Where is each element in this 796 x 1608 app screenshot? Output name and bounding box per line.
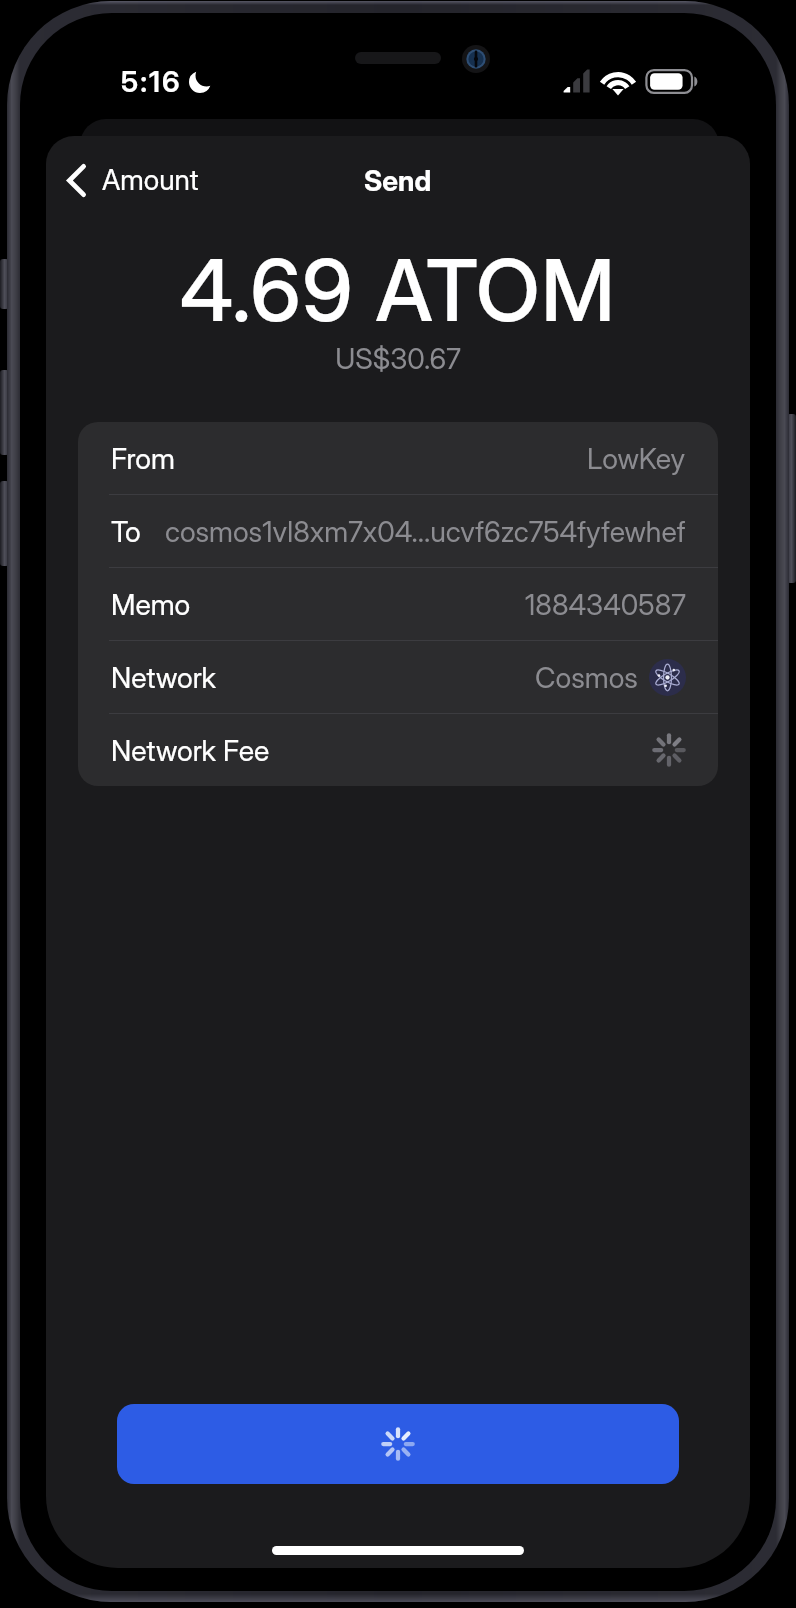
- staticText: cosmos1vl8xm7x04...ucvf6zc754fyfewhef: [165, 514, 686, 548]
- staticText: To: [111, 514, 141, 548]
- staticText: Cosmos: [535, 660, 638, 694]
- staticText: 4.69 ATOM: [46, 239, 750, 342]
- staticText: US$30.67: [46, 341, 750, 375]
- staticText: From: [111, 441, 175, 475]
- staticText: LowKey: [587, 441, 686, 475]
- staticText: 5:16: [121, 64, 182, 99]
- button[interactable]: Confirm and send: [117, 1404, 679, 1484]
- button[interactable]: Network Fee: [78, 714, 718, 786]
- staticText: Memo: [111, 587, 191, 621]
- button[interactable]: Memo: [78, 568, 718, 640]
- staticText: Send: [364, 164, 432, 198]
- staticText: Amount: [102, 163, 199, 197]
- button[interactable]: From: [78, 422, 718, 494]
- button[interactable]: Network: [78, 641, 718, 713]
- staticText: Network: [111, 660, 216, 694]
- staticText: 1884340587: [525, 587, 686, 621]
- button[interactable]: To: [78, 495, 718, 567]
- staticText: Network Fee: [111, 733, 270, 767]
- button[interactable]: Amount: [46, 155, 213, 205]
